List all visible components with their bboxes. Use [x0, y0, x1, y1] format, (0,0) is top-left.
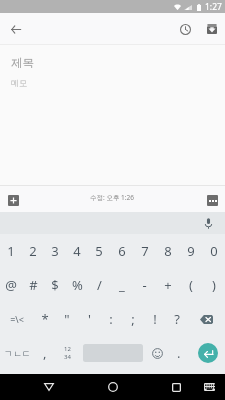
- button[interactable]: :: [100, 302, 122, 336]
- staticText: 수정: 오후 1:26: [90, 193, 135, 202]
- button[interactable]: Space: [80, 336, 146, 370]
- staticText: ;: [131, 310, 135, 328]
- staticText: 5: [95, 242, 103, 260]
- staticText: ": [64, 310, 70, 328]
- button[interactable]: Emoji: [146, 336, 168, 370]
- staticText: ': [88, 310, 91, 328]
- staticText: 6: [118, 242, 126, 260]
- staticText: -: [142, 276, 147, 294]
- button[interactable]: Back: [37, 375, 61, 399]
- button[interactable]: 5: [88, 234, 110, 268]
- button[interactable]: Voice input: [198, 213, 218, 233]
- button[interactable]: ;: [122, 302, 144, 336]
- button[interactable]: ): [202, 268, 225, 302]
- button[interactable]: -: [133, 268, 156, 302]
- button[interactable]: Archive: [200, 17, 224, 41]
- button[interactable]: ': [78, 302, 100, 336]
- button[interactable]: =\<: [0, 302, 34, 336]
- button[interactable]: Navigate up: [4, 17, 28, 41]
- staticText: :: [109, 310, 113, 328]
- button[interactable]: Add attachment: [1, 188, 25, 212]
- staticText: .: [177, 344, 181, 362]
- staticText: 0: [210, 242, 218, 260]
- staticText: 34: [64, 353, 71, 361]
- button[interactable]: .: [168, 336, 190, 370]
- button[interactable]: /: [88, 268, 110, 302]
- button[interactable]: 6: [110, 234, 133, 268]
- button[interactable]: More options: [200, 188, 224, 212]
- button[interactable]: $: [44, 268, 66, 302]
- button[interactable]: Recent apps: [164, 375, 188, 399]
- button[interactable]: 7: [133, 234, 156, 268]
- staticText: @: [5, 276, 17, 294]
- staticText: _: [119, 276, 125, 294]
- staticText: %: [72, 276, 83, 294]
- staticText: 7: [141, 242, 149, 260]
- button[interactable]: Home: [101, 375, 125, 399]
- staticText: 4: [73, 242, 81, 260]
- button[interactable]: +: [156, 268, 179, 302]
- button[interactable]: !: [144, 302, 166, 336]
- staticText: 1:27: [205, 1, 222, 13]
- staticText: /: [97, 276, 102, 294]
- staticText: 1: [7, 242, 15, 260]
- button[interactable]: @: [0, 268, 22, 302]
- button[interactable]: ㄱㄴㄷ: [0, 336, 34, 370]
- staticText: 메모: [11, 78, 27, 88]
- button[interactable]: %: [66, 268, 88, 302]
- staticText: 제목: [11, 56, 34, 70]
- staticText: (: [189, 276, 193, 294]
- button[interactable]: _: [110, 268, 133, 302]
- button[interactable]: Backspace: [188, 302, 225, 336]
- button[interactable]: ": [56, 302, 78, 336]
- staticText: 2: [29, 242, 37, 260]
- button[interactable]: Enter: [190, 336, 225, 370]
- staticText: *: [41, 310, 49, 328]
- staticText: #: [29, 276, 38, 294]
- button[interactable]: ?: [166, 302, 188, 336]
- button[interactable]: 9: [179, 234, 202, 268]
- button[interactable]: 2: [22, 234, 44, 268]
- button[interactable]: 1: [0, 234, 22, 268]
- button[interactable]: Switch keyboard: [197, 375, 221, 399]
- staticText: 9: [187, 242, 195, 260]
- button[interactable]: 4: [66, 234, 88, 268]
- button[interactable]: 8: [156, 234, 179, 268]
- staticText: ,: [43, 344, 47, 362]
- staticText: +: [164, 276, 172, 294]
- staticText: $: [51, 276, 59, 294]
- button[interactable]: #: [22, 268, 44, 302]
- button[interactable]: 0: [202, 234, 225, 268]
- staticText: ㄱㄴㄷ: [4, 348, 31, 359]
- staticText: ): [212, 276, 216, 294]
- staticText: =\<: [10, 313, 24, 325]
- staticText: 8: [164, 242, 172, 260]
- staticText: ?: [174, 310, 180, 328]
- button[interactable]: 3: [44, 234, 66, 268]
- button[interactable]: *: [34, 302, 56, 336]
- staticText: 3: [51, 242, 59, 260]
- staticText: !: [153, 310, 157, 328]
- button[interactable]: Reminder: [173, 17, 197, 41]
- button[interactable]: ,: [34, 336, 55, 370]
- button[interactable]: 12: [55, 336, 80, 370]
- button[interactable]: (: [179, 268, 202, 302]
- staticText: 12: [64, 345, 71, 353]
